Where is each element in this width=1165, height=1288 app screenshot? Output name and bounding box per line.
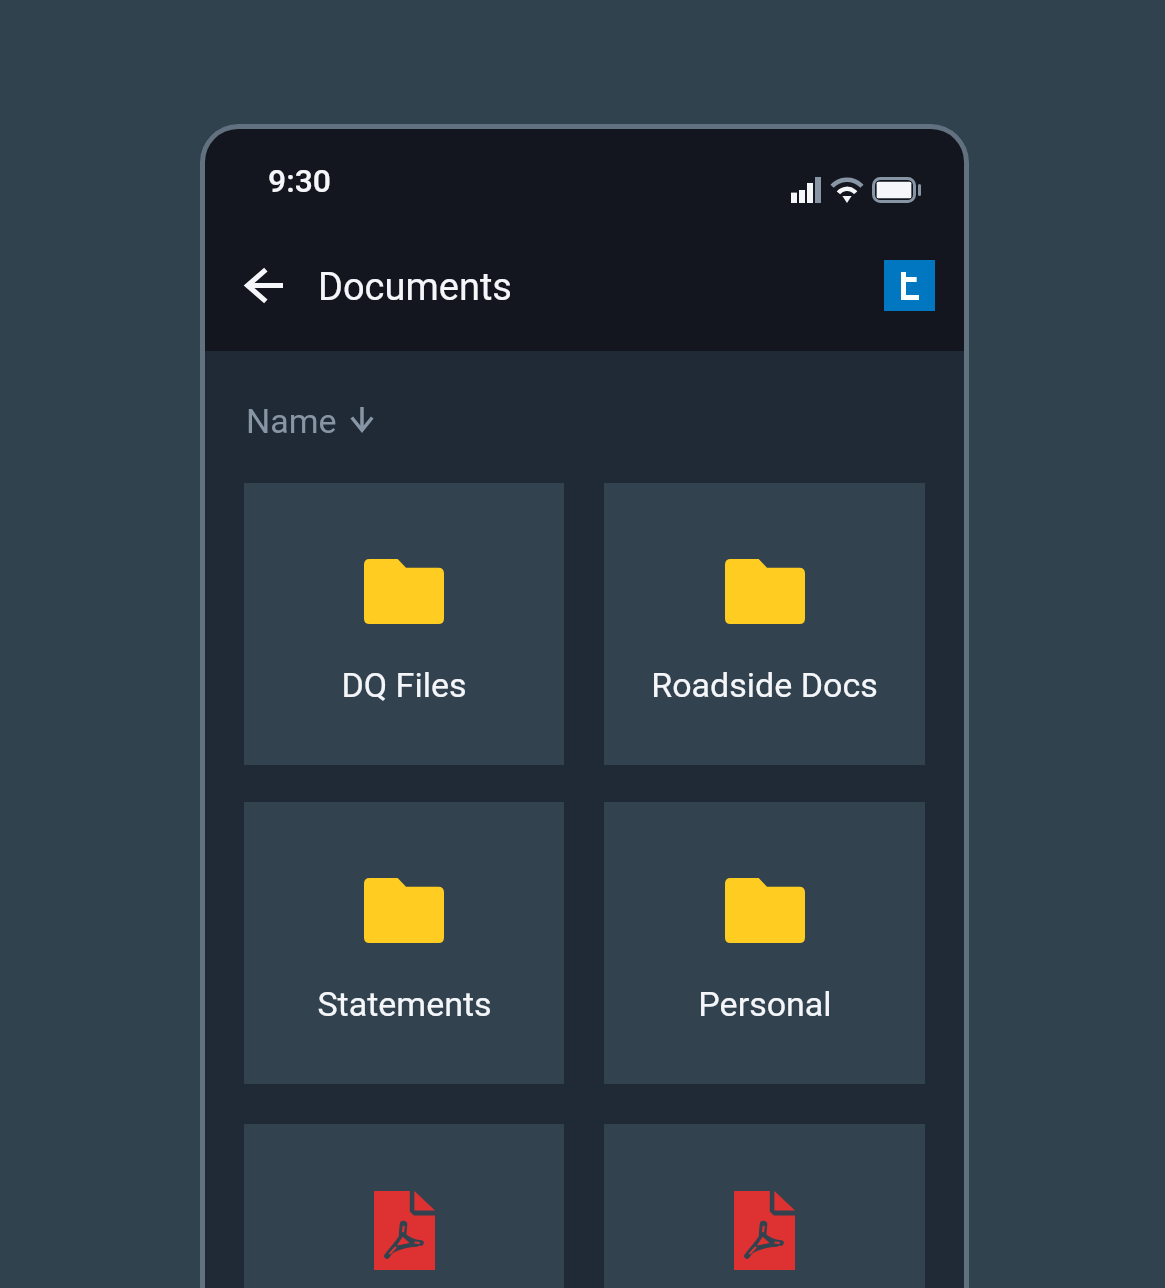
- staticText: Statements: [317, 984, 492, 1024]
- button[interactable]: Name: [246, 401, 374, 441]
- button[interactable]: Roadside Docs: [604, 483, 925, 765]
- staticText: 9:30: [268, 162, 332, 200]
- button[interactable]: DQ Files: [244, 483, 564, 765]
- button[interactable]: Tenstreet: [884, 260, 935, 311]
- staticText: Roadside Docs: [651, 665, 878, 705]
- staticText: DQ Files: [341, 665, 467, 705]
- button[interactable]: Statements: [244, 802, 564, 1084]
- staticText: Name: [246, 401, 337, 441]
- staticText: Documents: [318, 265, 512, 310]
- button[interactable]: [604, 1124, 925, 1288]
- staticText: Personal: [698, 984, 832, 1024]
- button[interactable]: Personal: [604, 802, 925, 1084]
- button[interactable]: Back: [234, 256, 293, 315]
- button[interactable]: [244, 1124, 564, 1288]
